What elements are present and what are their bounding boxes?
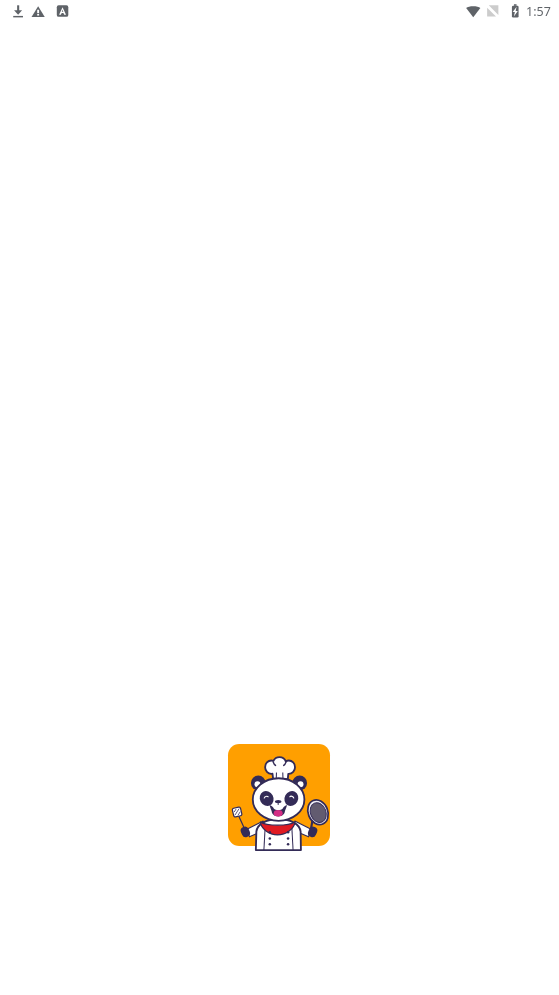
button[interactable]: App logo <box>228 744 330 846</box>
staticText: 1:57 <box>526 3 551 20</box>
